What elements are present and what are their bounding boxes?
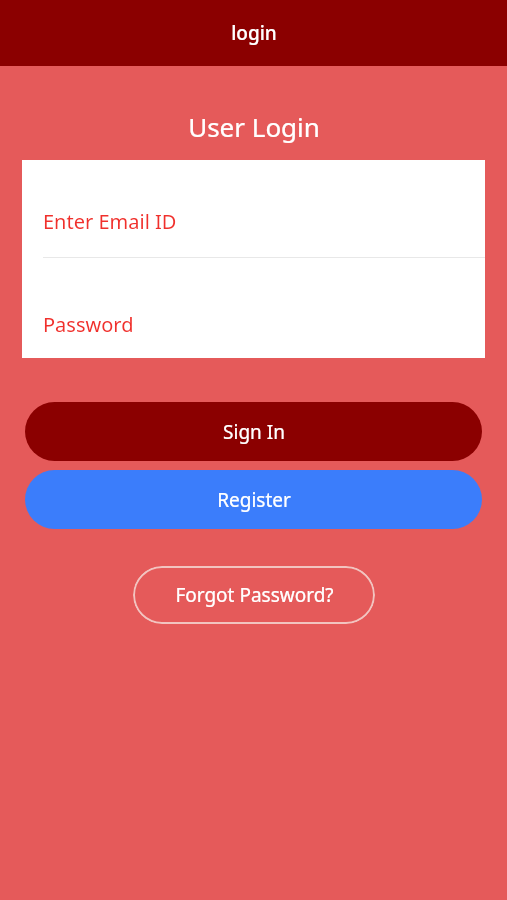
button[interactable]: Password <box>22 258 485 358</box>
staticText: login <box>231 20 277 46</box>
button[interactable]: Enter Email ID <box>22 160 485 257</box>
staticText: User Login <box>188 109 320 144</box>
staticText: Sign In <box>223 419 285 445</box>
button[interactable]: Sign In <box>25 402 482 461</box>
button[interactable]: Register <box>25 470 482 529</box>
staticText: Forgot Password? <box>175 582 334 608</box>
staticText: Enter Email ID <box>43 208 177 235</box>
button[interactable]: Forgot Password? <box>133 566 375 624</box>
staticText: Password <box>43 311 134 338</box>
staticText: Register <box>217 487 291 513</box>
